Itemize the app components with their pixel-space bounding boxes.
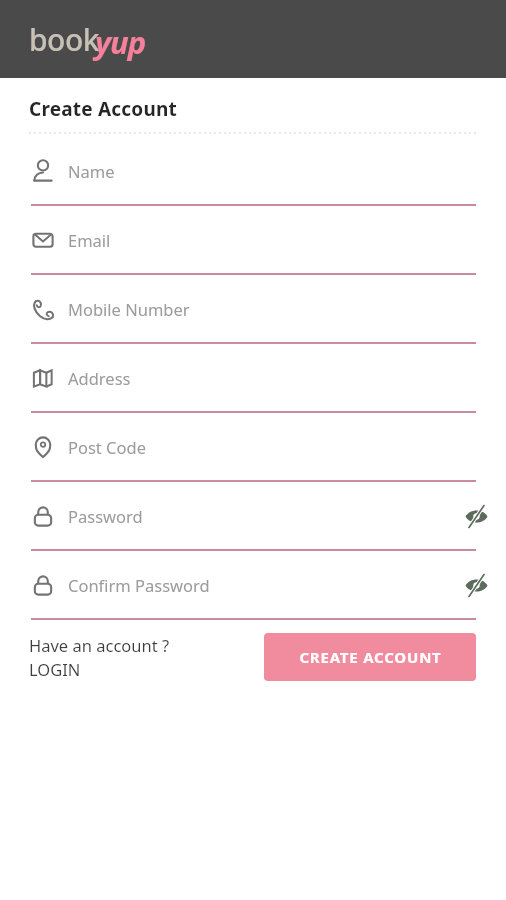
staticText: Have an account ? <box>29 634 170 656</box>
staticText: Mobile Number <box>68 298 190 320</box>
staticText: Email <box>68 229 111 251</box>
staticText: Confirm Password <box>68 574 210 596</box>
button[interactable]: Password <box>0 482 506 549</box>
staticText: book <box>29 19 100 60</box>
staticText: Address <box>68 367 131 389</box>
button[interactable]: CREATE ACCOUNT <box>264 633 476 681</box>
staticText: Name <box>68 160 115 182</box>
button[interactable]: Confirm Password <box>0 551 506 618</box>
button[interactable]: book <box>29 18 151 60</box>
staticText: LOGIN <box>29 658 81 680</box>
button[interactable]: Address <box>0 344 506 411</box>
staticText: yup <box>95 21 146 63</box>
button[interactable]: Show password <box>454 494 498 538</box>
button[interactable]: Mobile Number <box>0 275 506 342</box>
staticText: Post Code <box>68 436 146 458</box>
button[interactable]: Post Code <box>0 413 506 480</box>
button[interactable]: Email <box>0 206 506 273</box>
button[interactable]: Have an account ? <box>29 634 170 680</box>
staticText: Create Account <box>29 96 177 122</box>
button[interactable]: Name <box>0 137 506 204</box>
staticText: CREATE ACCOUNT <box>299 647 442 667</box>
staticText: Password <box>68 505 143 527</box>
button[interactable]: Show password <box>454 563 498 607</box>
